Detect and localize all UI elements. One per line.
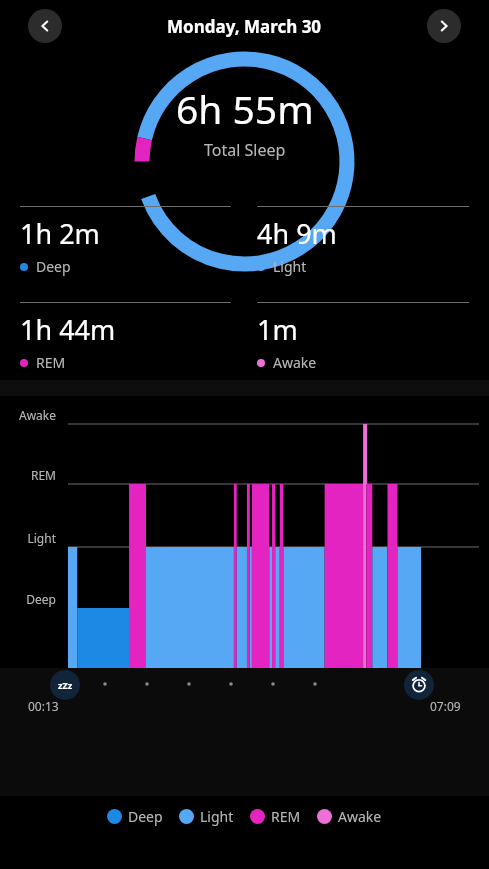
button[interactable]: 1m [257,302,469,372]
staticText: 1h 44m [20,311,116,348]
staticText: Total Sleep [204,139,286,161]
staticText: Deep [36,257,71,276]
staticText: Awake [273,353,317,372]
button[interactable]: Awake [317,807,382,826]
staticText: 6h 55m [176,82,314,135]
staticText: 1m [257,311,298,348]
staticText: Monday, March 30 [167,15,322,38]
button[interactable]: Wake alarm [404,670,434,700]
button[interactable]: 1h 2m [20,206,231,276]
staticText: 4h 9m [257,215,337,252]
staticText: Light [200,807,234,826]
button[interactable]: Previous day [28,9,62,43]
button[interactable]: Light [179,807,234,826]
staticText: REM [0,467,56,483]
staticText: Deep [128,807,163,826]
staticText: REM [271,807,301,826]
staticText: Deep [0,591,56,607]
staticText: Light [273,257,307,276]
button[interactable]: Sleep start [50,670,80,700]
button[interactable]: Next day [427,9,461,43]
staticText: 1h 2m [20,215,100,252]
staticText: Light [0,530,56,546]
button[interactable]: 4h 9m [257,206,469,276]
button[interactable]: Deep [107,807,163,826]
button[interactable]: REM [250,807,301,826]
staticText: 07:09 [430,698,461,714]
staticText: 00:13 [28,698,59,714]
staticText: Awake [0,407,56,423]
staticText: Awake [338,807,382,826]
staticText: REM [36,353,66,372]
button[interactable]: 1h 44m [20,302,231,372]
staticText: zZz [58,679,73,691]
